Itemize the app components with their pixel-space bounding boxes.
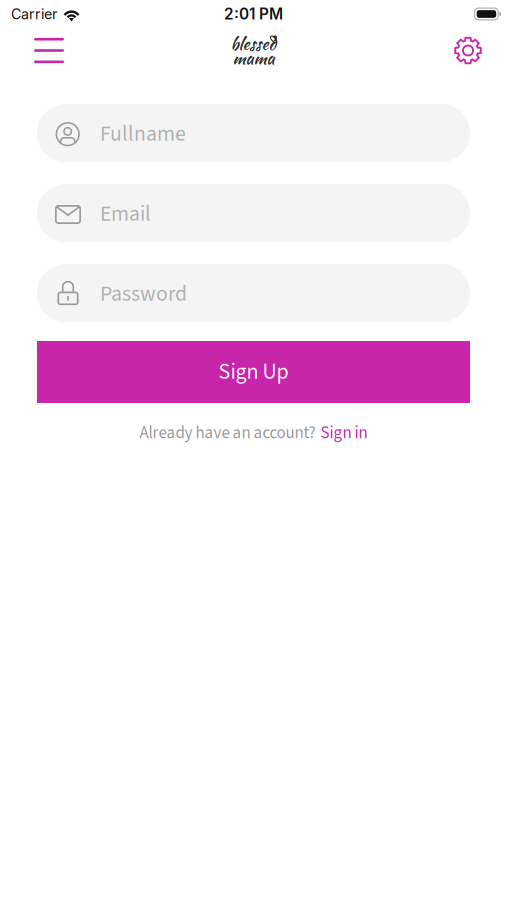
staticText: Fullname	[100, 118, 186, 149]
button[interactable]: Fullname	[37, 104, 470, 162]
staticText: Carrier	[11, 5, 57, 23]
button[interactable]: Password	[37, 264, 470, 322]
button[interactable]: Menu	[22, 26, 76, 75]
button[interactable]: Sign Up	[37, 341, 470, 403]
staticText: Email	[100, 198, 151, 229]
button[interactable]: Email	[37, 184, 470, 242]
staticText: Sign in	[320, 421, 367, 445]
button[interactable]: Already have an account?	[139, 414, 367, 452]
button[interactable]: Settings	[443, 26, 493, 74]
staticText: 2:01 PM	[224, 5, 283, 23]
staticText: mama	[232, 45, 274, 70]
staticText: blessed	[230, 31, 276, 56]
staticText: Password	[100, 278, 187, 309]
staticText: Sign Up	[218, 356, 288, 388]
staticText: Already have an account?	[139, 421, 315, 445]
